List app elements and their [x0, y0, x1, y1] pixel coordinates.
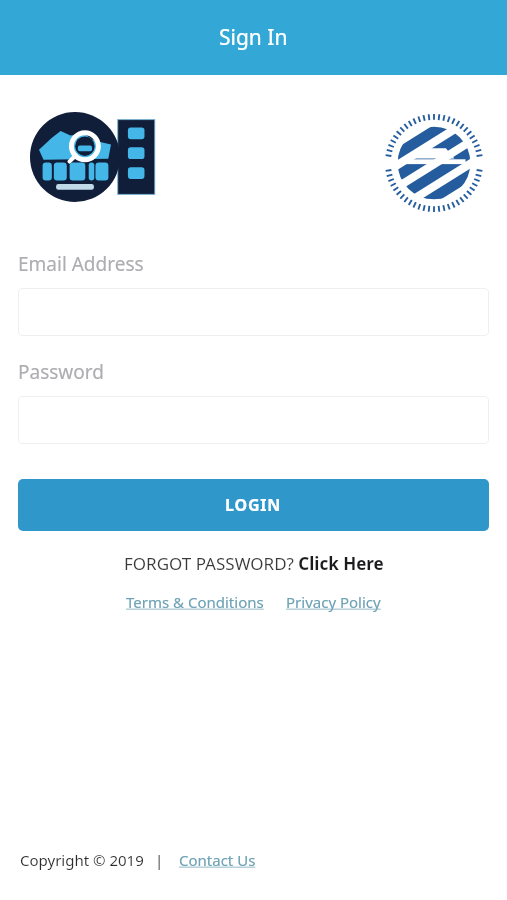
staticText: Terms & Conditions	[126, 592, 264, 612]
staticText: Copyright © 2019	[20, 850, 144, 870]
staticText: Email Address	[18, 251, 144, 277]
other: eCMID System CPD logo	[30, 112, 160, 202]
staticText: Contact Us	[179, 850, 256, 870]
button[interactable]: FORGOT PASSWORD? Click Here	[18, 552, 489, 575]
other: International Institute of Marine Survey…	[381, 110, 487, 216]
button[interactable]: Contact Us	[179, 850, 256, 870]
button[interactable]	[18, 288, 489, 336]
staticText: Sign In	[219, 23, 288, 52]
staticText: FORGOT PASSWORD? Click Here	[124, 552, 384, 575]
button[interactable]: Privacy Policy	[286, 592, 381, 612]
staticText: Password	[18, 359, 104, 385]
staticText: |	[155, 850, 164, 870]
staticText: Privacy Policy	[286, 592, 381, 612]
button[interactable]: Terms & Conditions	[126, 592, 264, 612]
staticText: LOGIN	[225, 494, 282, 516]
button[interactable]: LOGIN	[18, 479, 489, 531]
button[interactable]	[18, 396, 489, 444]
